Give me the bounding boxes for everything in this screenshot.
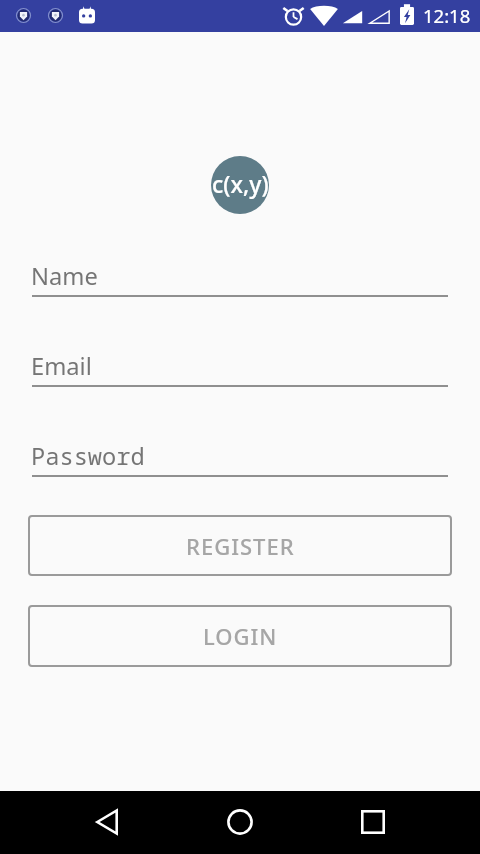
button[interactable]: Back [81, 796, 133, 848]
staticText: 12:18 [423, 3, 471, 28]
staticText: c(x,y) [212, 168, 269, 199]
button[interactable]: Name [32, 255, 448, 297]
button[interactable]: Home [214, 796, 266, 848]
staticText: LOGIN [203, 621, 278, 651]
staticText: REGISTER [186, 531, 295, 561]
staticText: Name [31, 260, 98, 292]
button[interactable]: LOGIN [28, 605, 452, 667]
staticText: Email [31, 350, 92, 382]
staticText: Password [31, 440, 145, 472]
button[interactable]: Password [32, 435, 448, 477]
button[interactable]: Email [32, 345, 448, 387]
button[interactable]: REGISTER [28, 515, 452, 576]
button[interactable]: Recents [347, 796, 399, 848]
